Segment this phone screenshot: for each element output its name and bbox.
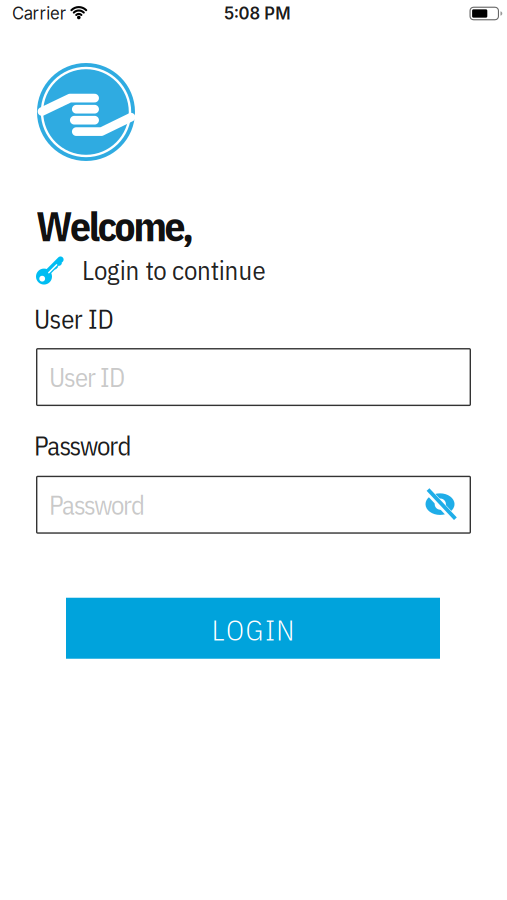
staticText: 5:08 PM bbox=[224, 3, 290, 24]
staticText: Welcome, bbox=[36, 199, 194, 253]
staticText: Carrier bbox=[12, 3, 66, 24]
staticText: O bbox=[226, 611, 244, 648]
staticText: L bbox=[212, 611, 225, 648]
staticText: I bbox=[265, 611, 275, 648]
button[interactable]: Show password bbox=[423, 488, 457, 522]
button[interactable]: L bbox=[66, 598, 440, 659]
staticText: N bbox=[276, 611, 294, 648]
staticText: User ID bbox=[34, 301, 114, 336]
staticText: Password bbox=[49, 487, 145, 522]
staticText: Login to continue bbox=[82, 253, 265, 287]
staticText: G bbox=[245, 611, 263, 648]
staticText: Password bbox=[34, 428, 131, 463]
staticText: User ID bbox=[49, 360, 125, 394]
